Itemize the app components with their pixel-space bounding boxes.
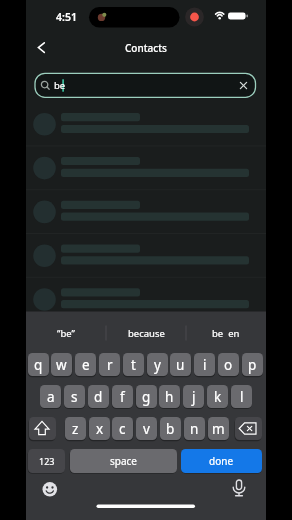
button[interactable]: e bbox=[75, 353, 96, 376]
staticText: because bbox=[128, 327, 165, 340]
button[interactable]: space bbox=[70, 449, 177, 473]
button[interactable] bbox=[35, 73, 255, 97]
staticText: n bbox=[190, 420, 199, 438]
staticText: p bbox=[248, 356, 257, 374]
staticText: g bbox=[142, 388, 151, 406]
button[interactable] bbox=[26, 190, 266, 233]
staticText: x bbox=[96, 420, 104, 438]
button[interactable]: m bbox=[208, 417, 229, 440]
button[interactable] bbox=[26, 103, 266, 146]
button[interactable]: l bbox=[231, 385, 252, 408]
button[interactable]: done bbox=[181, 449, 262, 473]
button[interactable]: x bbox=[89, 417, 110, 440]
button[interactable]: r bbox=[99, 353, 120, 376]
staticText: h bbox=[165, 388, 174, 406]
button[interactable]: s bbox=[64, 385, 85, 408]
staticText: b bbox=[166, 420, 175, 438]
staticText: space bbox=[110, 454, 137, 468]
staticText: Contacts bbox=[125, 41, 167, 54]
button[interactable]: be en bbox=[186, 324, 266, 343]
button[interactable]: p bbox=[242, 353, 263, 376]
button[interactable]: b bbox=[160, 417, 181, 440]
staticText: r bbox=[107, 356, 113, 374]
button[interactable]: k bbox=[207, 385, 228, 408]
staticText: f bbox=[120, 388, 125, 406]
button[interactable]: u bbox=[170, 353, 191, 376]
staticText: i bbox=[203, 356, 207, 374]
button[interactable] bbox=[229, 480, 249, 500]
button[interactable]: j bbox=[183, 385, 204, 408]
button[interactable]: y bbox=[147, 353, 168, 376]
staticText: d bbox=[94, 388, 103, 406]
staticText: u bbox=[176, 356, 185, 374]
staticText: m bbox=[212, 420, 225, 438]
button[interactable]: z bbox=[65, 417, 86, 440]
button[interactable]: f bbox=[112, 385, 133, 408]
button[interactable]: c bbox=[112, 417, 133, 440]
button[interactable]: v bbox=[136, 417, 157, 440]
button[interactable] bbox=[40, 480, 60, 500]
staticText: be bbox=[54, 79, 66, 92]
staticText: 4:51 bbox=[56, 10, 77, 24]
staticText: o bbox=[224, 356, 233, 374]
button[interactable] bbox=[26, 278, 266, 321]
button[interactable] bbox=[26, 146, 266, 189]
staticText: v bbox=[143, 420, 150, 438]
staticText: a bbox=[47, 388, 55, 406]
staticText: “be” bbox=[57, 327, 75, 340]
button[interactable]: g bbox=[136, 385, 157, 408]
staticText: l bbox=[240, 388, 244, 406]
staticText: y bbox=[154, 356, 161, 374]
button[interactable] bbox=[235, 417, 262, 440]
button[interactable]: w bbox=[51, 353, 72, 376]
button[interactable]: n bbox=[184, 417, 205, 440]
staticText: z bbox=[72, 420, 79, 438]
button[interactable]: a bbox=[40, 385, 61, 408]
staticText: 123 bbox=[39, 455, 55, 467]
staticText: j bbox=[192, 388, 196, 406]
staticText: s bbox=[71, 388, 78, 406]
staticText: done bbox=[209, 454, 234, 468]
staticText: c bbox=[119, 420, 126, 438]
staticText: be en bbox=[212, 327, 240, 340]
staticText: k bbox=[214, 388, 222, 406]
staticText: t bbox=[131, 356, 136, 374]
button[interactable]: t bbox=[123, 353, 144, 376]
staticText: e bbox=[82, 356, 90, 374]
button[interactable]: d bbox=[88, 385, 109, 408]
button[interactable] bbox=[26, 234, 266, 277]
button[interactable]: “be” bbox=[26, 324, 106, 343]
button[interactable]: i bbox=[194, 353, 215, 376]
staticText: q bbox=[34, 356, 43, 374]
button[interactable]: o bbox=[218, 353, 239, 376]
button[interactable]: q bbox=[28, 353, 49, 376]
button[interactable]: because bbox=[106, 324, 186, 343]
button[interactable] bbox=[29, 417, 56, 440]
button[interactable] bbox=[32, 38, 52, 58]
staticText: w bbox=[56, 356, 67, 374]
button[interactable]: h bbox=[159, 385, 180, 408]
button[interactable]: 123 bbox=[28, 449, 65, 473]
